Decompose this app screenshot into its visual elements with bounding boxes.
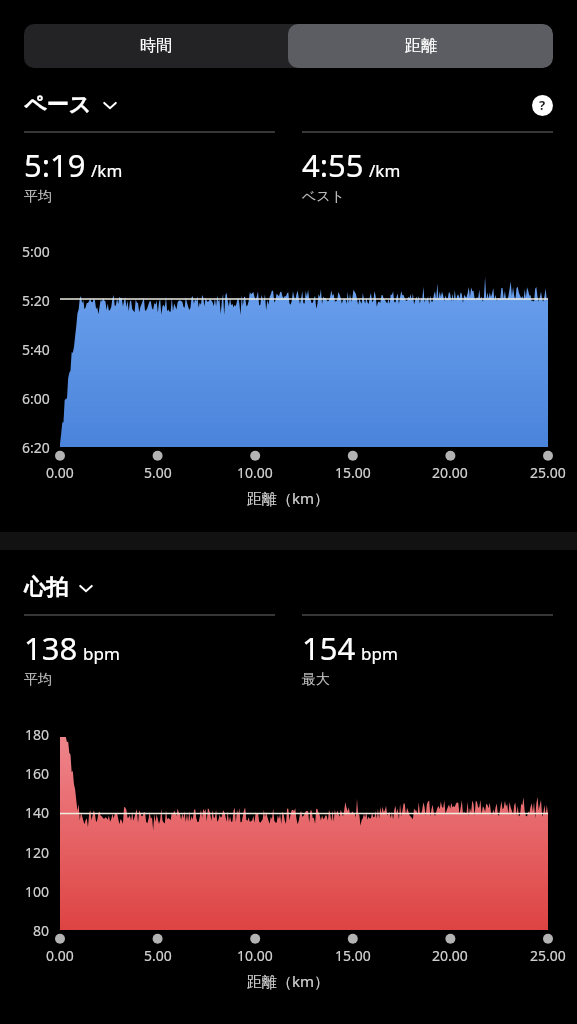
staticText: 10.00	[237, 463, 273, 482]
staticText: ベスト	[302, 188, 345, 206]
staticText: 0.00	[46, 946, 74, 965]
staticText: ?	[539, 96, 546, 114]
staticText: 120	[25, 843, 50, 862]
staticText: 距離（km）	[247, 488, 330, 508]
staticText: 5:20	[22, 291, 50, 310]
staticText: bpm	[361, 642, 398, 665]
staticText: /km	[369, 159, 401, 182]
staticText: bpm	[83, 642, 120, 665]
button[interactable]: 154	[302, 615, 553, 689]
staticText: 180	[25, 725, 50, 744]
staticText: 6:20	[22, 438, 50, 457]
staticText: 25.00	[530, 463, 566, 482]
staticText: 5:00	[22, 242, 50, 261]
staticText: /km	[91, 159, 123, 182]
staticText: 20.00	[432, 463, 468, 482]
button[interactable]: 5:19	[24, 132, 275, 206]
button[interactable]: ペース	[24, 91, 118, 119]
button[interactable]: 心拍	[24, 574, 94, 602]
button[interactable]: 時間	[24, 24, 288, 68]
staticText: 138	[24, 627, 78, 669]
button[interactable]: 距離	[288, 24, 553, 68]
staticText: 時間	[140, 36, 172, 56]
staticText: 160	[25, 764, 50, 783]
staticText: 4:55	[302, 144, 364, 186]
staticText: 心拍	[24, 574, 68, 602]
staticText: 0.00	[46, 463, 74, 482]
staticText: 80	[33, 921, 50, 940]
staticText: 5.00	[144, 946, 172, 965]
button[interactable]: Help	[529, 92, 555, 118]
staticText: 140	[25, 803, 50, 822]
staticText: 距離（km）	[247, 971, 330, 991]
staticText: 20.00	[432, 946, 468, 965]
staticText: 平均	[24, 671, 52, 689]
staticText: 25.00	[530, 946, 566, 965]
button[interactable]: 4:55	[302, 132, 553, 206]
staticText: ペース	[24, 91, 92, 119]
staticText: 154	[302, 627, 356, 669]
staticText: 最大	[302, 671, 330, 689]
staticText: 平均	[24, 188, 52, 206]
staticText: 15.00	[335, 946, 371, 965]
staticText: 5:40	[22, 340, 50, 359]
staticText: 100	[25, 882, 50, 901]
button[interactable]: 138	[24, 615, 275, 689]
staticText: 15.00	[335, 463, 371, 482]
staticText: 5.00	[144, 463, 172, 482]
staticText: 10.00	[237, 946, 273, 965]
staticText: 距離	[405, 36, 437, 56]
staticText: 5:19	[24, 144, 86, 186]
staticText: 6:00	[22, 389, 50, 408]
